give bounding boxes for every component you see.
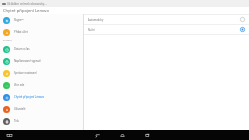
staticText: Přidat účet (14, 30, 28, 34)
staticText: Více zde (14, 83, 25, 87)
button[interactable]: Skype™ (0, 14, 83, 26)
staticText: Datum a čas (14, 47, 30, 51)
staticText: Uživatelé (14, 107, 26, 111)
button[interactable]: Tisk (0, 115, 83, 127)
button[interactable]: Recent apps (142, 130, 152, 140)
button[interactable]: Automaticky (84, 15, 249, 24)
staticText: Tisk (14, 119, 19, 123)
button[interactable]: Home (117, 130, 127, 140)
button[interactable]: Více zde (0, 79, 83, 91)
button[interactable]: Ruční (84, 25, 249, 34)
staticText: Ruční (88, 28, 95, 32)
button[interactable]: Keyboard (4, 130, 14, 140)
staticText: Naplánované vypnutí (14, 59, 41, 63)
button[interactable]: Back (92, 130, 102, 140)
staticText: Chytré připojení Lenovo (3, 8, 49, 14)
staticText: Ukládám snímek obrazovky… (7, 2, 47, 6)
staticText: SYSTÉM (3, 39, 12, 42)
button[interactable]: Uživatelé (0, 103, 83, 115)
button[interactable]: Správce nastavení (0, 67, 83, 79)
staticText: Správce nastavení (14, 71, 37, 75)
staticText: Chytré připojení Lenovo (14, 95, 45, 99)
button[interactable]: Přidat účet (0, 26, 83, 38)
staticText: Skype™ (14, 18, 24, 22)
staticText: Automaticky (88, 18, 104, 22)
button[interactable]: Datum a čas (0, 43, 83, 55)
button[interactable]: Naplánované vypnutí (0, 55, 83, 67)
button[interactable]: Chytré připojení Lenovo (0, 91, 83, 103)
